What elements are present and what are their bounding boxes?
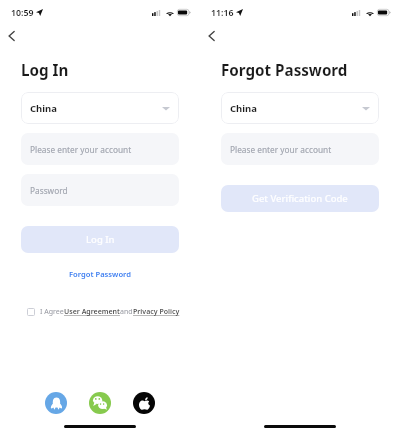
button[interactable]: User Agreement [64, 307, 120, 317]
button[interactable]: Back [201, 25, 222, 46]
button[interactable]: Back [1, 25, 22, 46]
staticText: Get Verification Code [252, 192, 348, 205]
staticText: User Agreement [64, 307, 120, 317]
staticText: Forgot Password [69, 269, 131, 279]
button[interactable]: Privacy Policy [133, 307, 180, 317]
button[interactable]: China [221, 92, 379, 124]
button[interactable]: China [21, 92, 179, 124]
staticText: China [30, 102, 57, 115]
staticText: Password [30, 185, 68, 196]
staticText: Forgot Password [221, 60, 348, 81]
button[interactable]: Get Verification Code [221, 185, 379, 212]
staticText: China [230, 102, 257, 115]
button[interactable]: Log In [21, 226, 179, 253]
button[interactable]: QQ login [45, 392, 67, 414]
button[interactable]: Password [21, 174, 179, 206]
staticText: 10:59 [11, 7, 34, 19]
button[interactable]: Please enter your account [221, 133, 379, 165]
button[interactable]: Apple login [133, 392, 155, 414]
staticText: Please enter your account [30, 144, 132, 155]
staticText: Log In [21, 60, 69, 81]
staticText: Privacy Policy [133, 307, 180, 317]
button[interactable]: WeChat login [89, 392, 111, 414]
staticText: I Agree [40, 307, 64, 317]
staticText: Please enter your account [230, 144, 332, 155]
button[interactable]: Please enter your account [21, 133, 179, 165]
staticText: and [120, 307, 133, 317]
staticText: Log In [86, 233, 115, 246]
staticText: 11:16 [211, 7, 234, 19]
button[interactable]: Agree checkbox [27, 308, 35, 316]
button[interactable]: Forgot Password [69, 269, 131, 279]
